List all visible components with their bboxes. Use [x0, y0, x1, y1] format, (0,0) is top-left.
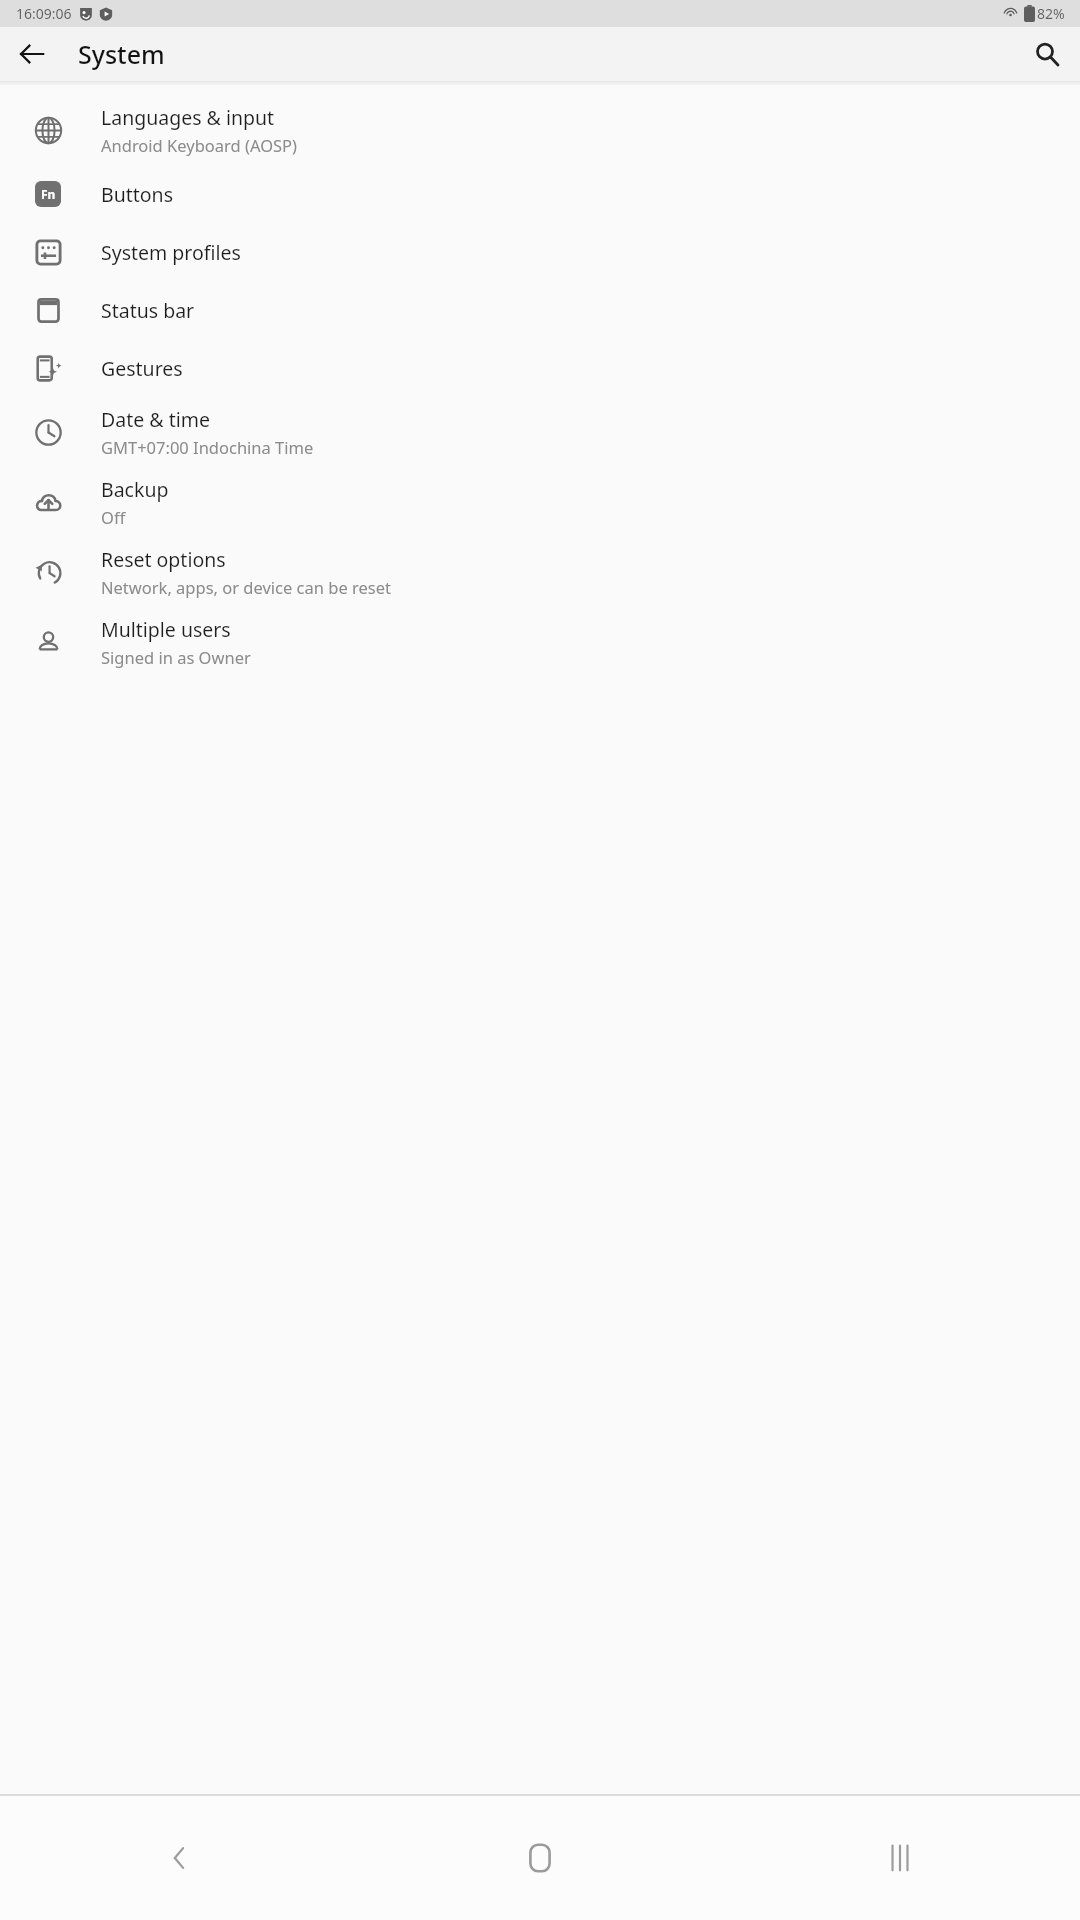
button[interactable]: Gestures: [0, 339, 1080, 397]
button[interactable]: Fn: [0, 165, 1080, 223]
staticText: Date & time: [101, 406, 210, 433]
button[interactable]: Languages & input: [0, 95, 1080, 165]
button[interactable]: System profiles: [0, 223, 1080, 281]
button[interactable]: Back: [8, 30, 56, 78]
staticText: System profiles: [101, 239, 241, 266]
staticText: 82%: [1037, 4, 1065, 23]
staticText: GMT+07:00 Indochina Time: [101, 436, 314, 458]
staticText: System: [78, 37, 165, 71]
staticText: Languages & input: [101, 104, 275, 131]
staticText: Backup: [101, 476, 169, 503]
staticText: Signed in as Owner: [101, 646, 251, 668]
button[interactable]: Multiple users: [0, 607, 1080, 677]
button[interactable]: Back: [0, 1796, 360, 1920]
button[interactable]: Backup: [0, 467, 1080, 537]
staticText: Buttons: [101, 181, 173, 208]
staticText: Network, apps, or device can be reset: [101, 576, 391, 598]
staticText: Fn: [41, 186, 56, 202]
staticText: Status bar: [101, 297, 195, 324]
staticText: Multiple users: [101, 616, 231, 643]
staticText: Gestures: [101, 355, 183, 382]
staticText: Off: [101, 506, 126, 528]
button[interactable]: Home: [360, 1796, 720, 1920]
button[interactable]: Reset options: [0, 537, 1080, 607]
button[interactable]: Status bar: [0, 281, 1080, 339]
button[interactable]: Search: [1023, 30, 1071, 78]
button[interactable]: Date & time: [0, 397, 1080, 467]
button[interactable]: Recents: [720, 1796, 1080, 1920]
staticText: 16:09:06: [16, 4, 72, 23]
staticText: Android Keyboard (AOSP): [101, 134, 298, 156]
staticText: Reset options: [101, 546, 226, 573]
